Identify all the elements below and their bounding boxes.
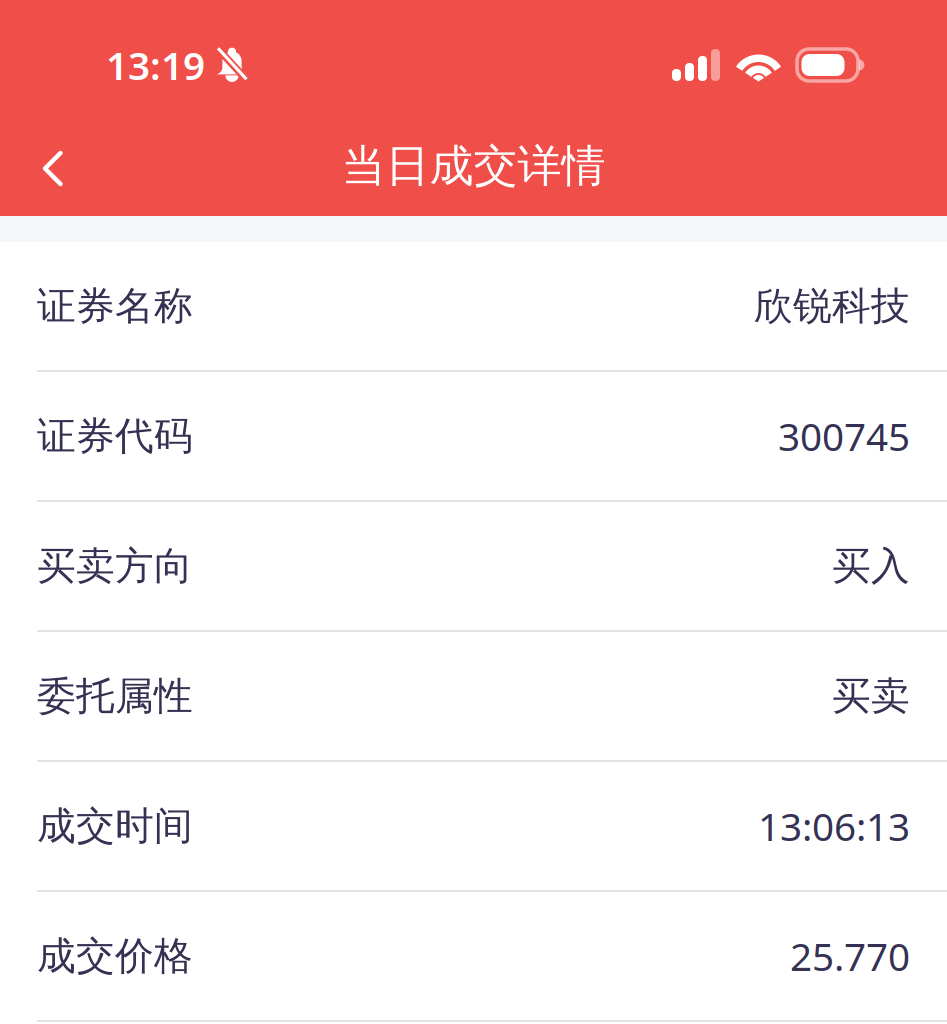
staticText: 买卖 bbox=[832, 672, 910, 720]
staticText: 欣锐科技 bbox=[754, 282, 910, 330]
staticText: 成交价格 bbox=[37, 932, 193, 980]
staticText: 委托属性 bbox=[37, 672, 193, 720]
staticText: 25.770 bbox=[790, 930, 910, 982]
staticText: 证券名称 bbox=[37, 282, 193, 330]
staticText: 13:06:13 bbox=[758, 800, 910, 852]
staticText: 300745 bbox=[778, 410, 910, 462]
staticText: 成交时间 bbox=[37, 802, 193, 850]
button[interactable]: 返回 bbox=[16, 121, 90, 210]
staticText: 买入 bbox=[832, 542, 910, 590]
staticText: 当日成交详情 bbox=[341, 139, 605, 193]
staticText: 买卖方向 bbox=[37, 542, 193, 590]
staticText: 证券代码 bbox=[37, 412, 193, 460]
staticText: 13:19 bbox=[106, 39, 205, 91]
